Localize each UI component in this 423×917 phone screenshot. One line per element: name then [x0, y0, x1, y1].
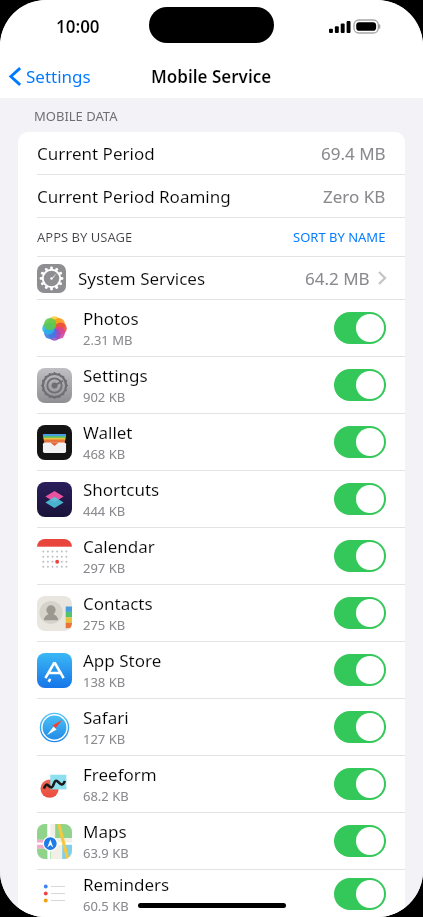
staticText: APPS BY USAGE [37, 228, 133, 246]
staticText: Photos [83, 307, 139, 330]
staticText: SORT BY NAME [293, 228, 386, 246]
button[interactable]: Reminders [18, 870, 405, 917]
staticText: Calendar [83, 535, 155, 558]
staticText: Shortcuts [83, 478, 160, 501]
button[interactable]: Current Period [18, 132, 405, 174]
button[interactable]: Safari [18, 699, 405, 755]
staticText: MOBILE DATA [34, 107, 118, 125]
button[interactable]: Toggle mobile data [334, 825, 386, 857]
button[interactable]: SORT BY NAME [293, 228, 386, 246]
staticText: Current Period Roaming [37, 185, 231, 208]
staticText: 297 KB [83, 559, 126, 577]
button[interactable]: Toggle mobile data [334, 426, 386, 458]
button[interactable]: Settings [18, 357, 405, 413]
button[interactable]: Freeform [18, 756, 405, 812]
staticText: Contacts [83, 592, 153, 615]
button[interactable]: Toggle mobile data [334, 768, 386, 800]
button[interactable]: Current Period Roaming [18, 175, 405, 217]
staticText: 60.5 KB [83, 897, 129, 915]
staticText: Settings [26, 65, 91, 88]
staticText: Mobile Service [151, 65, 272, 88]
staticText: 468 KB [83, 445, 126, 463]
staticText: App Store [83, 649, 162, 672]
staticText: 127 KB [83, 730, 126, 748]
button[interactable]: Toggle mobile data [334, 483, 386, 515]
button[interactable]: Toggle mobile data [334, 540, 386, 572]
button[interactable]: Shortcuts [18, 471, 405, 527]
staticText: Maps [83, 820, 127, 843]
staticText: 69.4 MB [321, 142, 386, 165]
button[interactable]: Photos [18, 300, 405, 356]
button[interactable]: Toggle mobile data [334, 369, 386, 401]
staticText: 10:00 [56, 15, 100, 38]
button[interactable]: Toggle mobile data [334, 878, 386, 910]
staticText: Reminders [83, 873, 170, 896]
button[interactable]: Toggle mobile data [334, 312, 386, 344]
button[interactable]: Wallet [18, 414, 405, 470]
button[interactable]: Toggle mobile data [334, 654, 386, 686]
staticText: 444 KB [83, 502, 126, 520]
button[interactable]: Toggle mobile data [334, 711, 386, 743]
staticText: 2.31 MB [83, 331, 133, 349]
button[interactable]: App Store [18, 642, 405, 698]
button[interactable]: Settings [0, 59, 99, 94]
staticText: Safari [83, 706, 129, 729]
button[interactable]: Maps [18, 813, 405, 869]
staticText: 64.2 MB [305, 267, 370, 290]
staticText: System Services [78, 267, 206, 290]
button[interactable]: Contacts [18, 585, 405, 641]
button[interactable]: System Services [18, 257, 405, 299]
staticText: 68.2 KB [83, 787, 129, 805]
staticText: Freeform [83, 763, 157, 786]
staticText: 902 KB [83, 388, 126, 406]
staticText: 63.9 KB [83, 844, 129, 862]
staticText: Zero KB [323, 185, 386, 208]
staticText: Settings [83, 364, 148, 387]
button[interactable]: Calendar [18, 528, 405, 584]
staticText: 275 KB [83, 616, 126, 634]
staticText: 138 KB [83, 673, 126, 691]
button[interactable]: Toggle mobile data [334, 597, 386, 629]
staticText: Wallet [83, 421, 133, 444]
staticText: Current Period [37, 142, 155, 165]
